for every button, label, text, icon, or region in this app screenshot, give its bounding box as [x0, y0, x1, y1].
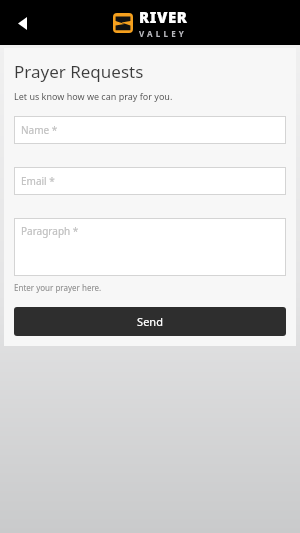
button[interactable]: Back	[6, 7, 38, 39]
staticText: RIVER	[139, 7, 188, 27]
staticText: Let us know how we can pray for you.	[14, 90, 173, 102]
button[interactable]: Name *	[14, 116, 286, 144]
staticText: Prayer Requests	[14, 60, 144, 83]
staticText: VALLEY	[139, 28, 188, 39]
staticText: Name *	[21, 123, 58, 137]
button[interactable]: Send	[14, 307, 286, 336]
button[interactable]: Email *	[14, 167, 286, 195]
staticText: Send	[137, 314, 163, 329]
staticText: Paragraph *	[21, 224, 79, 238]
staticText: Enter your prayer here.	[14, 282, 102, 293]
staticText: Email *	[21, 174, 55, 188]
button[interactable]: Paragraph *	[14, 218, 286, 276]
